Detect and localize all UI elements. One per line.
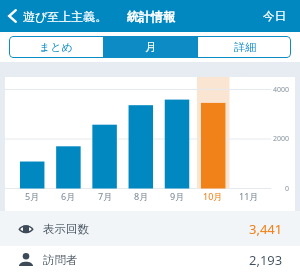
staticText: 月 (145, 40, 156, 54)
staticText: 遊び至上主義。 (23, 9, 108, 24)
staticText: 10月 (203, 190, 223, 202)
staticText: 9月 (170, 190, 185, 202)
staticText: 11月 (239, 190, 259, 202)
staticText: 2000 (272, 134, 289, 144)
button[interactable]: 詳細 (198, 36, 291, 58)
staticText: 0 (284, 184, 289, 194)
button[interactable]: 月 (104, 36, 197, 58)
staticText: 2,193 (249, 251, 283, 269)
button[interactable]: まとめ (9, 36, 103, 58)
button[interactable]: 遊び至上主義。 (0, 0, 112, 32)
button[interactable]: 表示回数 (0, 211, 300, 246)
staticText: 4000 (272, 85, 289, 95)
staticText: 5月 (25, 190, 40, 202)
staticText: 詳細 (234, 40, 256, 54)
staticText: 8月 (134, 190, 149, 202)
staticText: 統計情報 (127, 9, 175, 24)
staticText: まとめ (39, 40, 73, 54)
button[interactable]: 訪問者 (0, 246, 300, 273)
staticText: 表示回数 (43, 222, 89, 236)
button[interactable]: 今日 (248, 0, 300, 32)
staticText: 3,441 (249, 220, 283, 238)
staticText: 今日 (263, 9, 286, 23)
staticText: 訪問者 (43, 253, 78, 267)
staticText: 6月 (61, 190, 76, 202)
staticText: 7月 (98, 190, 113, 202)
